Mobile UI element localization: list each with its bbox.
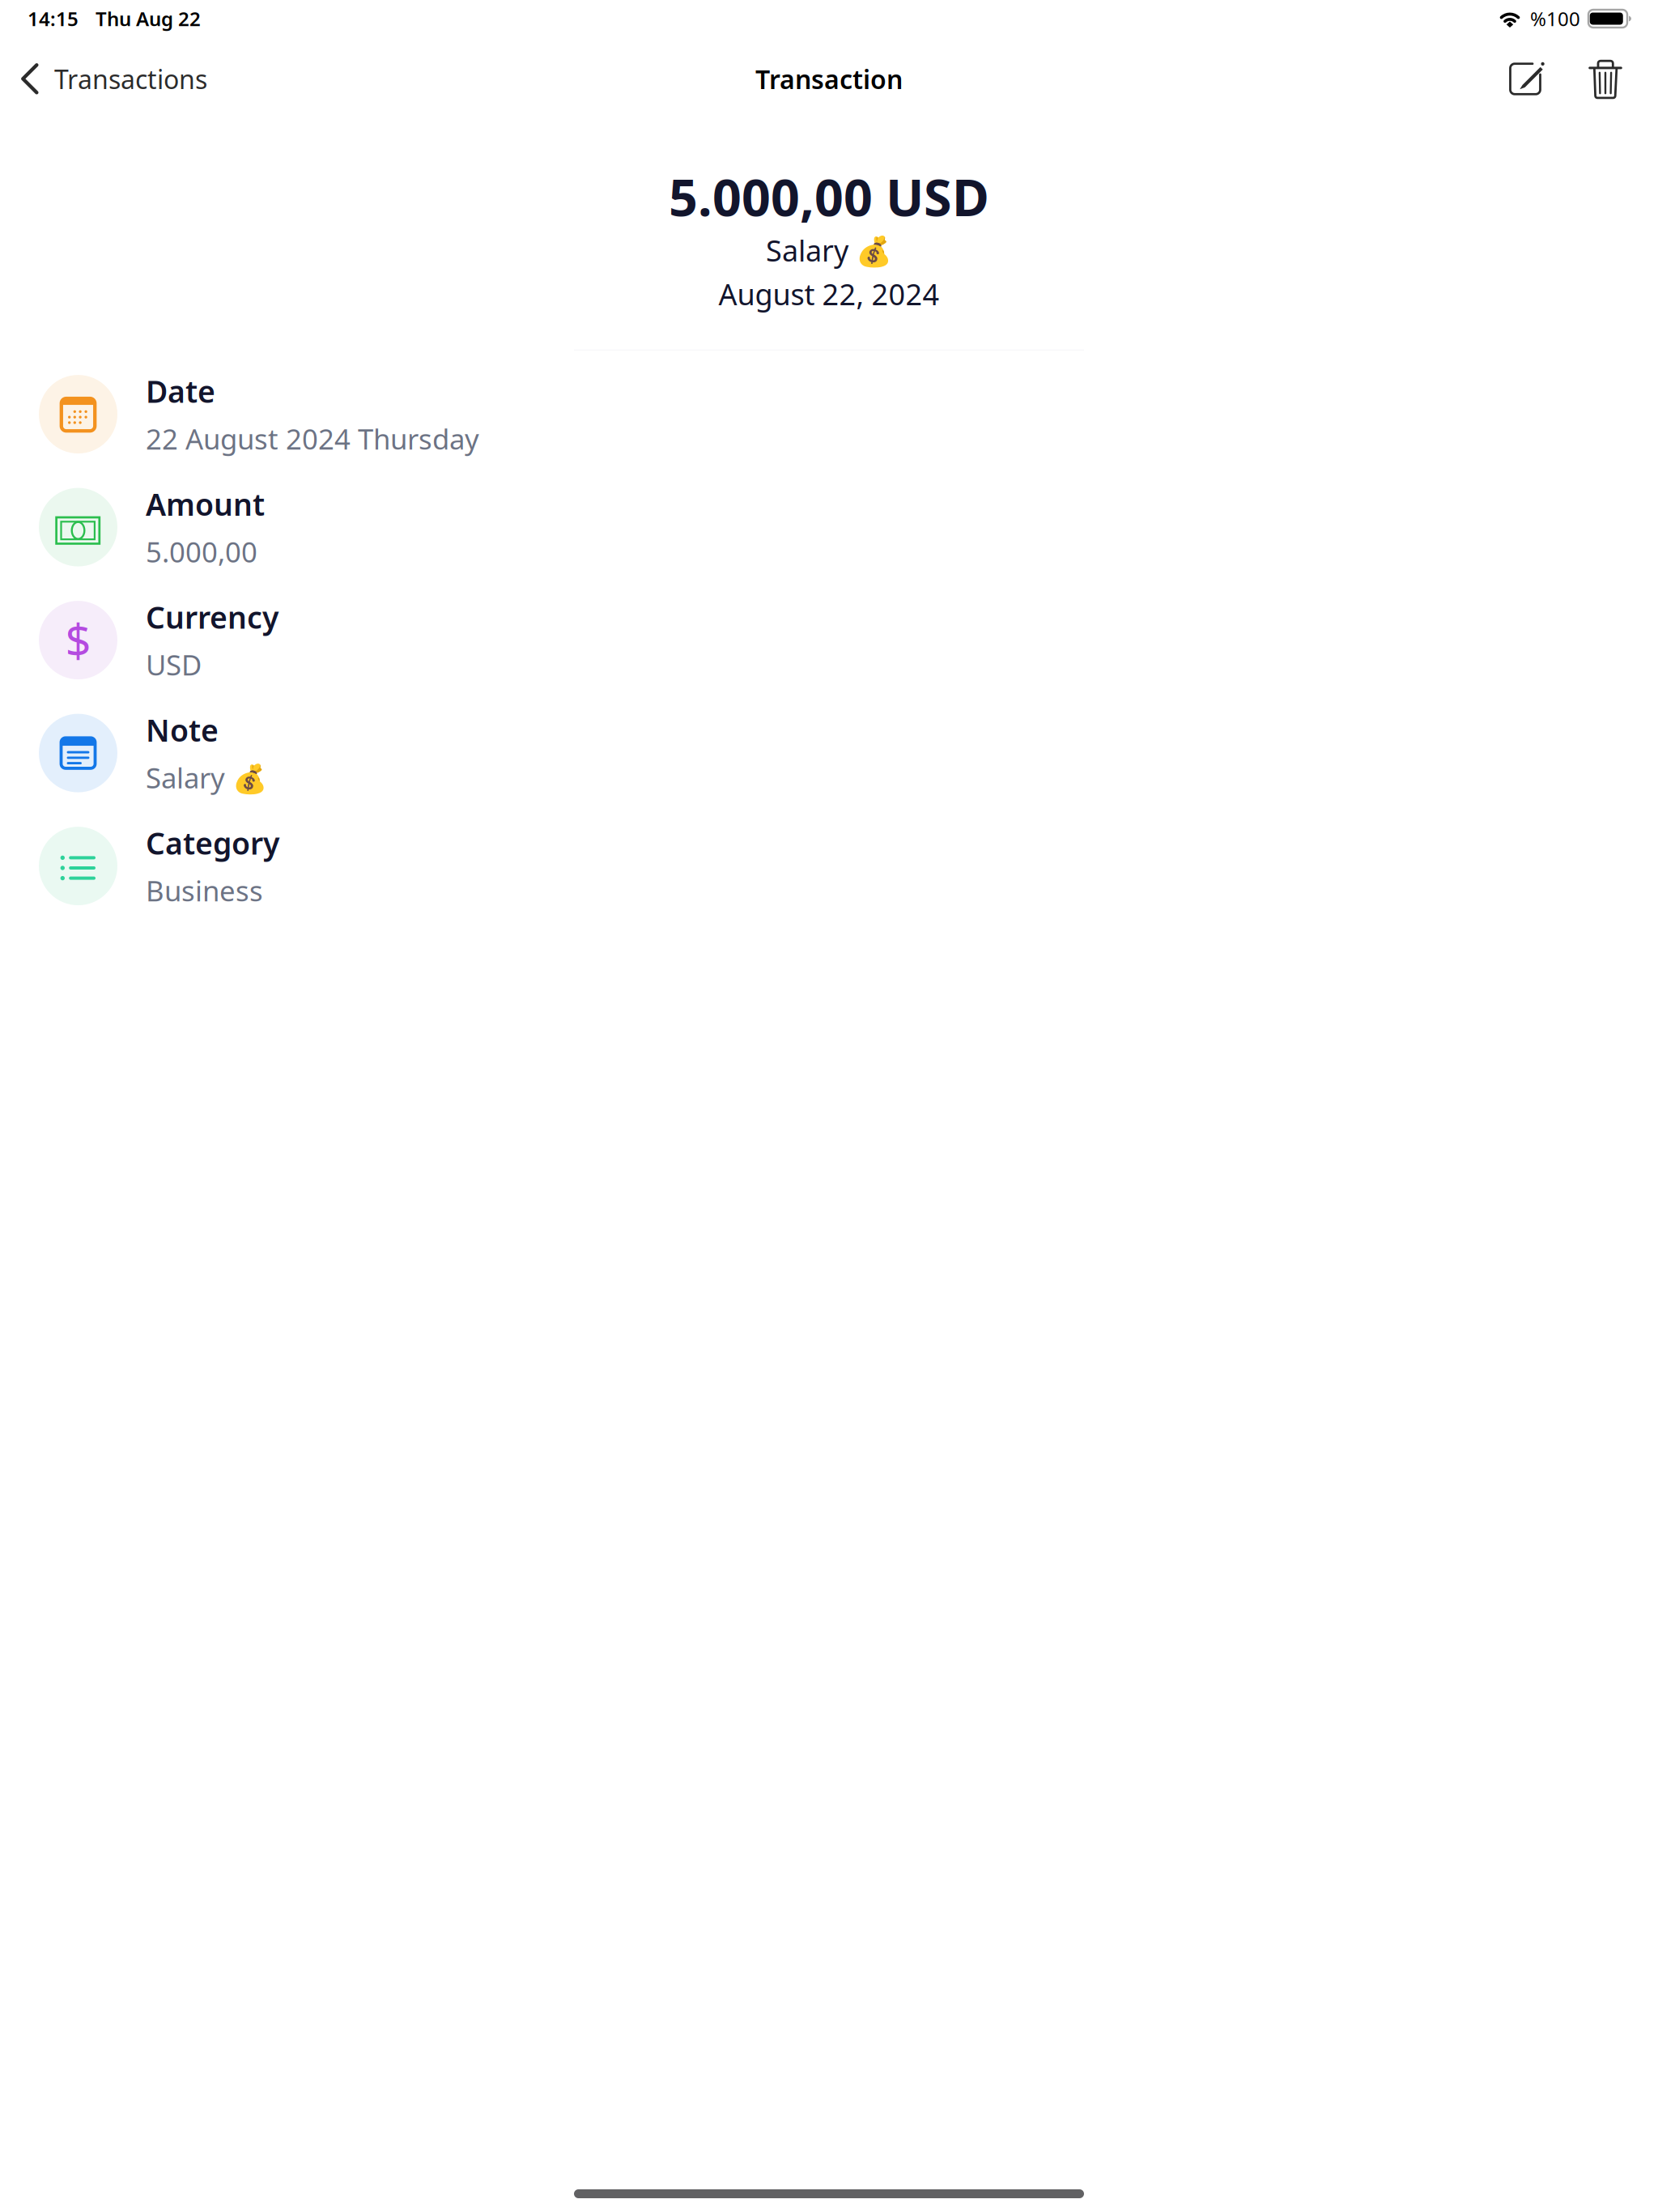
button[interactable]: Amount <box>0 471 1658 584</box>
staticText: $ <box>65 610 91 670</box>
staticText: Date <box>146 371 215 411</box>
staticText: Salary 💰 <box>766 231 892 270</box>
staticText: Thu Aug 22 <box>96 6 201 32</box>
staticText: Transactions <box>54 62 207 96</box>
staticText: %100 <box>1530 6 1580 32</box>
button[interactable]: Note <box>0 697 1658 810</box>
staticText: Business <box>146 872 263 909</box>
staticText: 5.000,00 <box>146 533 257 570</box>
staticText: Note <box>146 710 219 750</box>
staticText: Transaction <box>755 62 903 96</box>
button[interactable]: Delete <box>1571 44 1640 114</box>
staticText: Amount <box>146 484 265 524</box>
staticText: Currency <box>146 597 278 637</box>
button[interactable]: Transactions <box>0 37 220 121</box>
staticText: 14:15 <box>28 6 79 32</box>
button[interactable]: $ <box>0 584 1658 697</box>
staticText: August 22, 2024 <box>718 274 940 313</box>
staticText: 22 August 2024 Thursday <box>146 420 479 457</box>
staticText: Category <box>146 823 279 863</box>
button[interactable]: Category <box>0 810 1658 922</box>
staticText: USD <box>146 646 202 683</box>
button[interactable]: Edit <box>1490 44 1560 114</box>
staticText: Salary 💰 <box>146 759 267 796</box>
staticText: 5.000,00 USD <box>669 163 989 230</box>
button[interactable]: Date <box>0 358 1658 471</box>
